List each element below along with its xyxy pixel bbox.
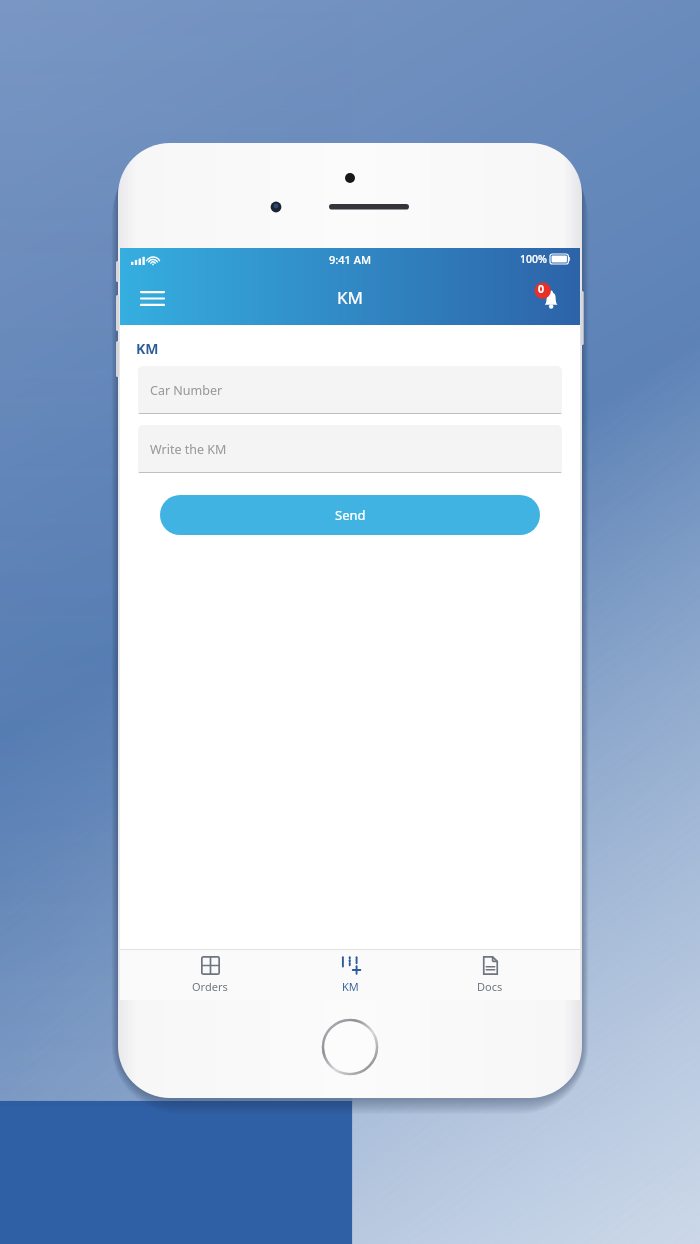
staticText: Orders [192, 979, 228, 994]
staticText: Docs [477, 979, 503, 994]
button[interactable]: KM [300, 950, 400, 1000]
button[interactable]: Notifications [529, 278, 569, 318]
staticText: Send [335, 506, 366, 524]
button[interactable]: Docs [440, 950, 540, 1000]
staticText: 0 [538, 282, 545, 296]
staticText: KM [337, 286, 363, 309]
staticText: 100% [520, 252, 547, 266]
button[interactable]: Write the KM [138, 425, 562, 473]
staticText: KM [342, 979, 359, 994]
staticText: Car Number [150, 382, 223, 399]
staticText: 9:41 AM [329, 252, 372, 267]
staticText: KM [136, 339, 159, 358]
button[interactable]: Orders [160, 950, 260, 1000]
staticText: Write the KM [150, 441, 227, 458]
button[interactable]: Send [160, 495, 540, 535]
button[interactable]: Car Number [138, 366, 562, 414]
button[interactable]: Open navigation menu [132, 278, 172, 318]
